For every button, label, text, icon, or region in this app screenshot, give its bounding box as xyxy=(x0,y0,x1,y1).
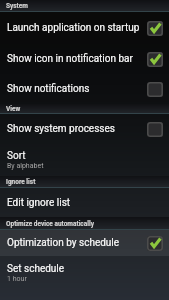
staticText: Edit ignore list xyxy=(7,197,71,209)
staticText: 1 hour xyxy=(7,275,27,283)
button[interactable]: Show system processes xyxy=(0,114,169,144)
staticText: By alphabet xyxy=(7,162,44,170)
button[interactable]: Optimization by schedule xyxy=(0,230,169,256)
button[interactable]: Set schedule xyxy=(0,256,169,289)
staticText: Ignore list xyxy=(6,178,36,186)
staticText: Optimize device automatically xyxy=(6,220,94,228)
staticText: System xyxy=(6,2,28,10)
staticText: Sort xyxy=(7,150,26,162)
staticText: Optimization by schedule xyxy=(7,237,120,249)
button[interactable]: Sort xyxy=(0,144,169,176)
staticText: Show icon in notification bar xyxy=(7,53,133,65)
button[interactable]: Show notifications xyxy=(0,74,169,104)
button[interactable]: Launch application on startup xyxy=(0,12,169,44)
button[interactable]: Edit ignore list xyxy=(0,188,169,217)
staticText: Set schedule xyxy=(7,263,65,275)
staticText: Launch application on startup xyxy=(7,22,140,34)
staticText: Show system processes xyxy=(7,123,115,135)
button[interactable]: Show icon in notification bar xyxy=(0,44,169,74)
staticText: Show notifications xyxy=(7,83,90,95)
staticText: View xyxy=(6,105,21,113)
